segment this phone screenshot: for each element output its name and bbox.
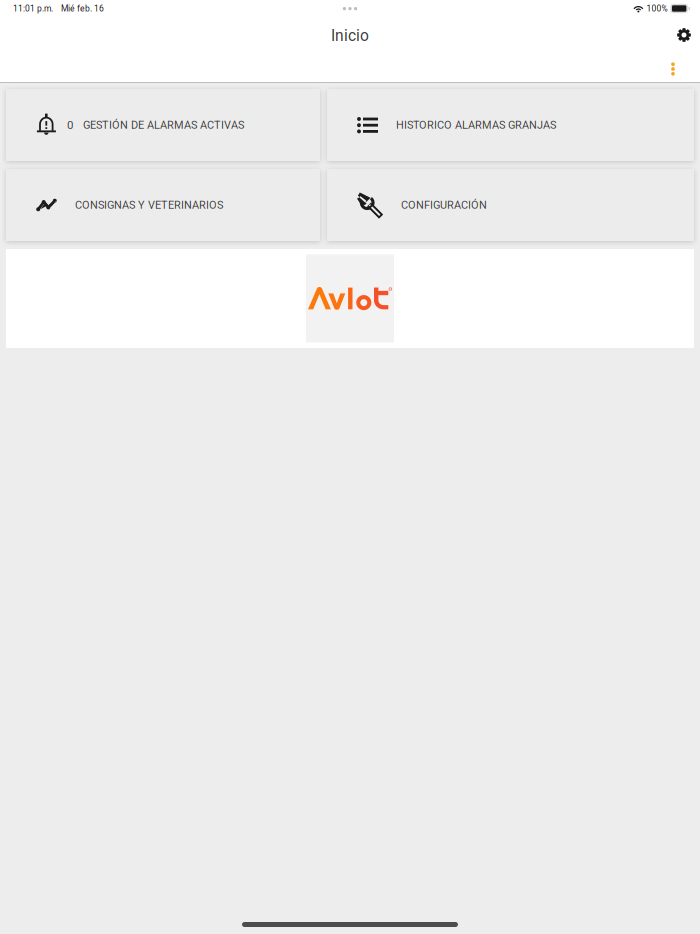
button[interactable]: Más opciones [657, 57, 689, 81]
staticText: 11:01 p.m. [13, 3, 53, 13]
staticText: CONFIGURACIÓN [401, 199, 487, 211]
button[interactable]: Ajustes [666, 18, 700, 52]
button[interactable]: HISTORICO ALARMAS GRANJAS [327, 89, 694, 161]
staticText: Inicio [331, 26, 369, 45]
staticText: CONSIGNAS Y VETERINARIOS [75, 199, 223, 211]
staticText: 100% [646, 3, 667, 13]
button[interactable]: CONSIGNAS Y VETERINARIOS [6, 169, 320, 241]
button[interactable]: CONFIGURACIÓN [327, 169, 694, 241]
staticText: Mié feb. 16 [61, 3, 104, 13]
staticText: GESTIÓN DE ALARMAS ACTIVAS [83, 119, 244, 131]
staticText: 0 [67, 118, 73, 132]
staticText: HISTORICO ALARMAS GRANJAS [396, 119, 556, 131]
button[interactable]: 0 [6, 89, 320, 161]
